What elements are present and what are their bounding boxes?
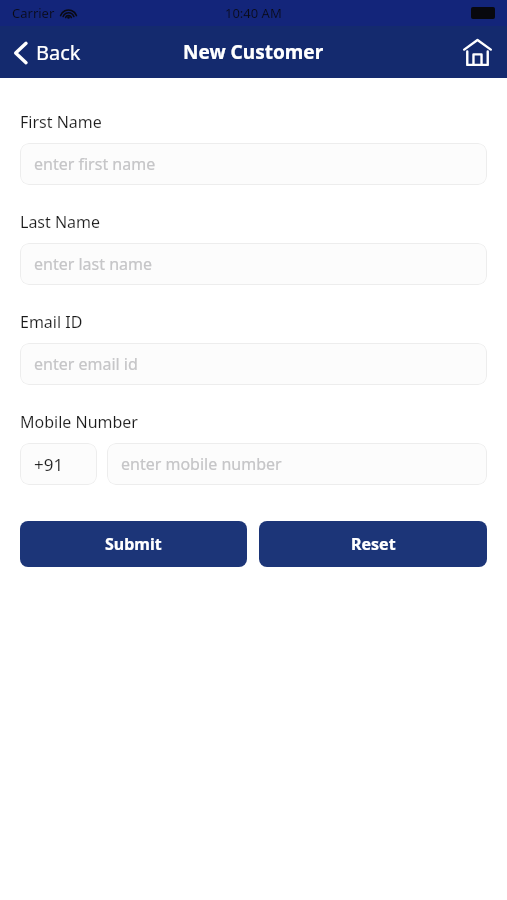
staticText: enter email id bbox=[34, 353, 138, 375]
staticText: First Name bbox=[20, 111, 102, 133]
button[interactable]: Submit bbox=[20, 521, 247, 567]
staticText: Email ID bbox=[20, 311, 83, 333]
button[interactable]: Back bbox=[0, 33, 91, 72]
button[interactable]: enter email id bbox=[20, 343, 487, 385]
staticText: Carrier bbox=[12, 4, 55, 22]
button[interactable]: enter last name bbox=[20, 243, 487, 285]
staticText: +91 bbox=[34, 453, 64, 476]
staticText: Submit bbox=[105, 533, 162, 555]
staticText: Back bbox=[36, 39, 81, 66]
button[interactable]: enter first name bbox=[20, 143, 487, 185]
staticText: Mobile Number bbox=[20, 411, 138, 433]
button[interactable]: Reset bbox=[259, 521, 487, 567]
staticText: enter last name bbox=[34, 253, 153, 275]
staticText: enter mobile number bbox=[121, 453, 282, 475]
staticText: Last Name bbox=[20, 211, 101, 233]
staticText: enter first name bbox=[34, 153, 156, 175]
button[interactable]: enter mobile number bbox=[107, 443, 487, 485]
button[interactable]: +91 bbox=[20, 443, 97, 485]
staticText: New Customer bbox=[183, 39, 324, 65]
staticText: Reset bbox=[351, 533, 396, 555]
staticText: 10:40 AM bbox=[225, 4, 282, 22]
button[interactable]: Home bbox=[448, 29, 507, 75]
